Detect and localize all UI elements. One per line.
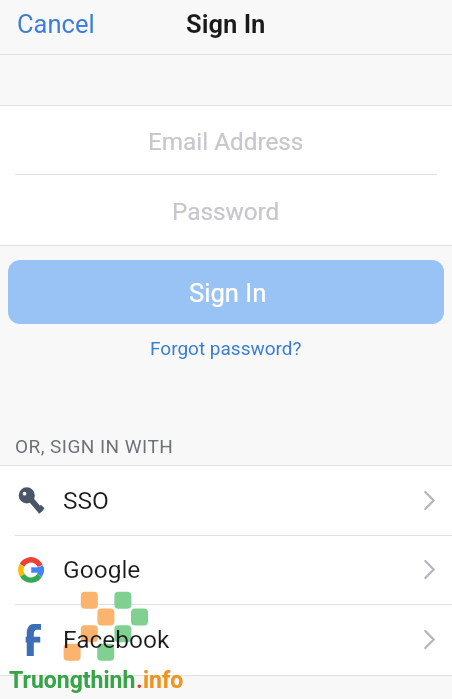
staticText: Google <box>63 555 141 584</box>
button[interactable]: Forgot password? <box>142 334 310 362</box>
other: Open SSO <box>424 491 435 510</box>
button[interactable]: Google <box>0 535 452 604</box>
other: Open Facebook <box>424 630 435 649</box>
button[interactable]: SSO <box>0 466 452 535</box>
staticText: OR, SIGN IN WITH <box>15 435 174 457</box>
staticText: Sign In <box>186 9 266 39</box>
button[interactable]: Cancel <box>16 9 96 39</box>
staticText: Password <box>172 197 280 225</box>
staticText: Sign In <box>189 278 267 308</box>
staticText: Truongthinh <box>9 667 136 694</box>
staticText: Facebook <box>63 625 170 654</box>
staticText: info <box>143 667 184 694</box>
button[interactable]: Facebook <box>0 605 452 674</box>
other: Open Google <box>424 560 435 579</box>
button[interactable]: Sign In <box>8 260 444 324</box>
staticText: Email Address <box>148 127 304 155</box>
staticText: . <box>136 667 143 694</box>
staticText: SSO <box>63 486 109 515</box>
